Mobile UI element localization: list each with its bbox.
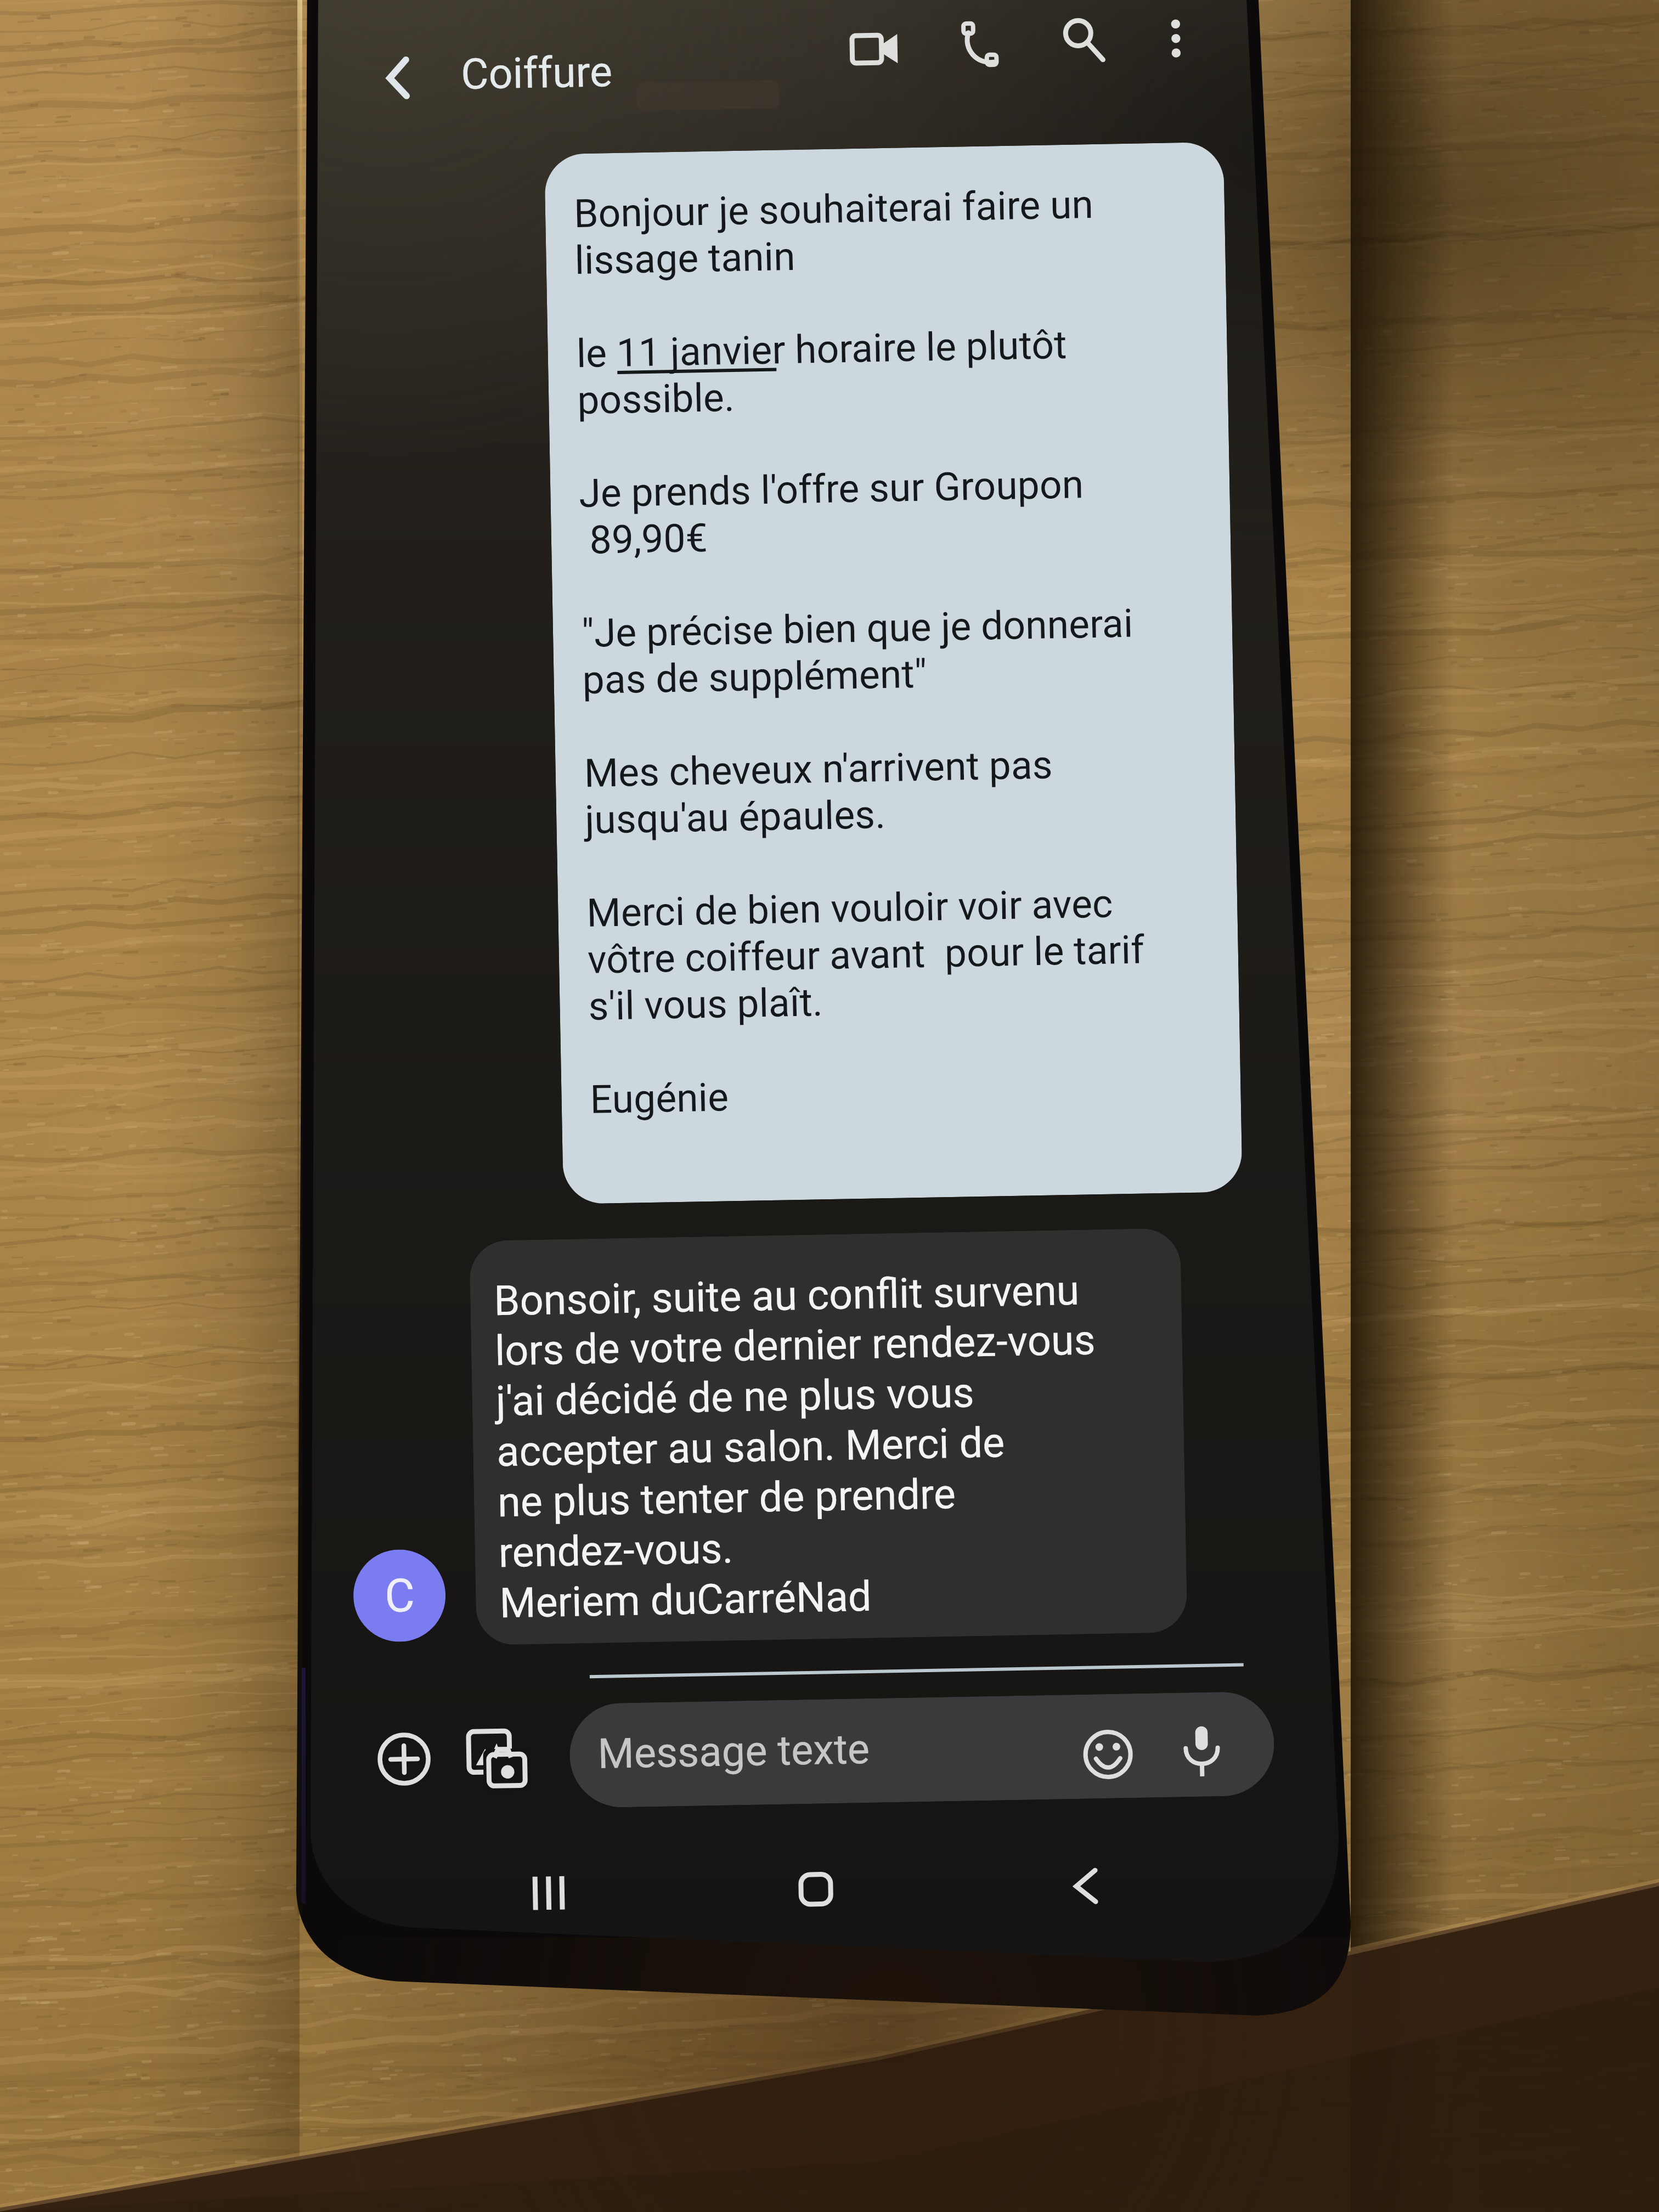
button[interactable]	[469, 1228, 1188, 1645]
button[interactable]: Recent apps	[507, 1851, 591, 1935]
button[interactable]: Search	[1042, 0, 1126, 83]
button[interactable]: Contact avatar	[353, 1549, 446, 1643]
staticText: Bonsoir, suite au conflit survenu lors d…	[493, 1266, 1101, 1628]
button[interactable]: Coiffure	[421, 35, 653, 110]
button[interactable]: Back	[1043, 1844, 1127, 1927]
button[interactable]: Video call	[833, 8, 917, 91]
staticText: Message texte	[597, 1725, 870, 1779]
button[interactable]: More options	[1134, 0, 1218, 80]
button[interactable]	[544, 142, 1243, 1204]
button[interactable]: Add attachment	[362, 1717, 446, 1801]
staticText: Coiffure	[461, 47, 613, 99]
button[interactable]: Message texte	[569, 1691, 1275, 1808]
button[interactable]: Gallery	[455, 1716, 539, 1800]
button[interactable]: Voice input	[1160, 1709, 1244, 1793]
button[interactable]: Home	[774, 1847, 858, 1931]
staticText: C	[384, 1569, 415, 1623]
button[interactable]: Back	[351, 31, 445, 125]
button[interactable]: Emoji	[1066, 1713, 1150, 1796]
staticText: Bonjour je souhaiterai faire un lissage …	[573, 181, 1148, 1123]
button[interactable]: Call	[938, 3, 1021, 87]
